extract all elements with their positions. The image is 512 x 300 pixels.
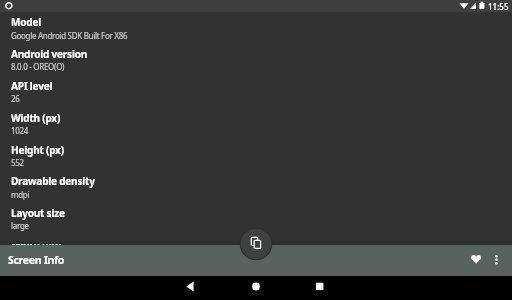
staticText: 8.0.0 - OREO(O) bbox=[11, 61, 65, 72]
button[interactable] bbox=[182, 279, 198, 295]
button[interactable]: Drawable density bbox=[11, 174, 95, 188]
button[interactable]: API level bbox=[11, 79, 53, 93]
staticText: Android version bbox=[11, 47, 88, 61]
button[interactable]: Layout size bbox=[11, 206, 65, 220]
staticText: Screen Info bbox=[8, 253, 65, 267]
staticText: 552 bbox=[11, 157, 24, 168]
staticText: Layout size bbox=[11, 206, 65, 220]
staticText: Width (dp) bbox=[11, 236, 61, 250]
staticText: 1024 bbox=[11, 125, 29, 136]
button[interactable] bbox=[248, 279, 264, 295]
button[interactable]: Model bbox=[11, 15, 41, 29]
button[interactable]: Android version bbox=[11, 47, 88, 61]
staticText: API level bbox=[11, 79, 53, 93]
staticText: large bbox=[11, 220, 29, 231]
staticText: mdpi bbox=[11, 189, 30, 200]
button[interactable]: Height (px) bbox=[11, 143, 64, 157]
staticText: Model bbox=[11, 15, 41, 29]
staticText: Google Android SDK Built For X86 bbox=[11, 30, 128, 41]
button[interactable] bbox=[239, 227, 273, 261]
button[interactable] bbox=[468, 251, 484, 267]
staticText: Width (px) bbox=[11, 111, 61, 125]
button[interactable]: Width (px) bbox=[11, 111, 61, 125]
button[interactable]: Width (dp) bbox=[11, 236, 61, 250]
staticText: 26 bbox=[11, 93, 20, 104]
staticText: Drawable density bbox=[11, 174, 95, 188]
button[interactable] bbox=[312, 279, 328, 295]
button[interactable] bbox=[490, 251, 504, 269]
staticText: Height (px) bbox=[11, 143, 64, 157]
staticText: 11:55 bbox=[488, 1, 509, 12]
